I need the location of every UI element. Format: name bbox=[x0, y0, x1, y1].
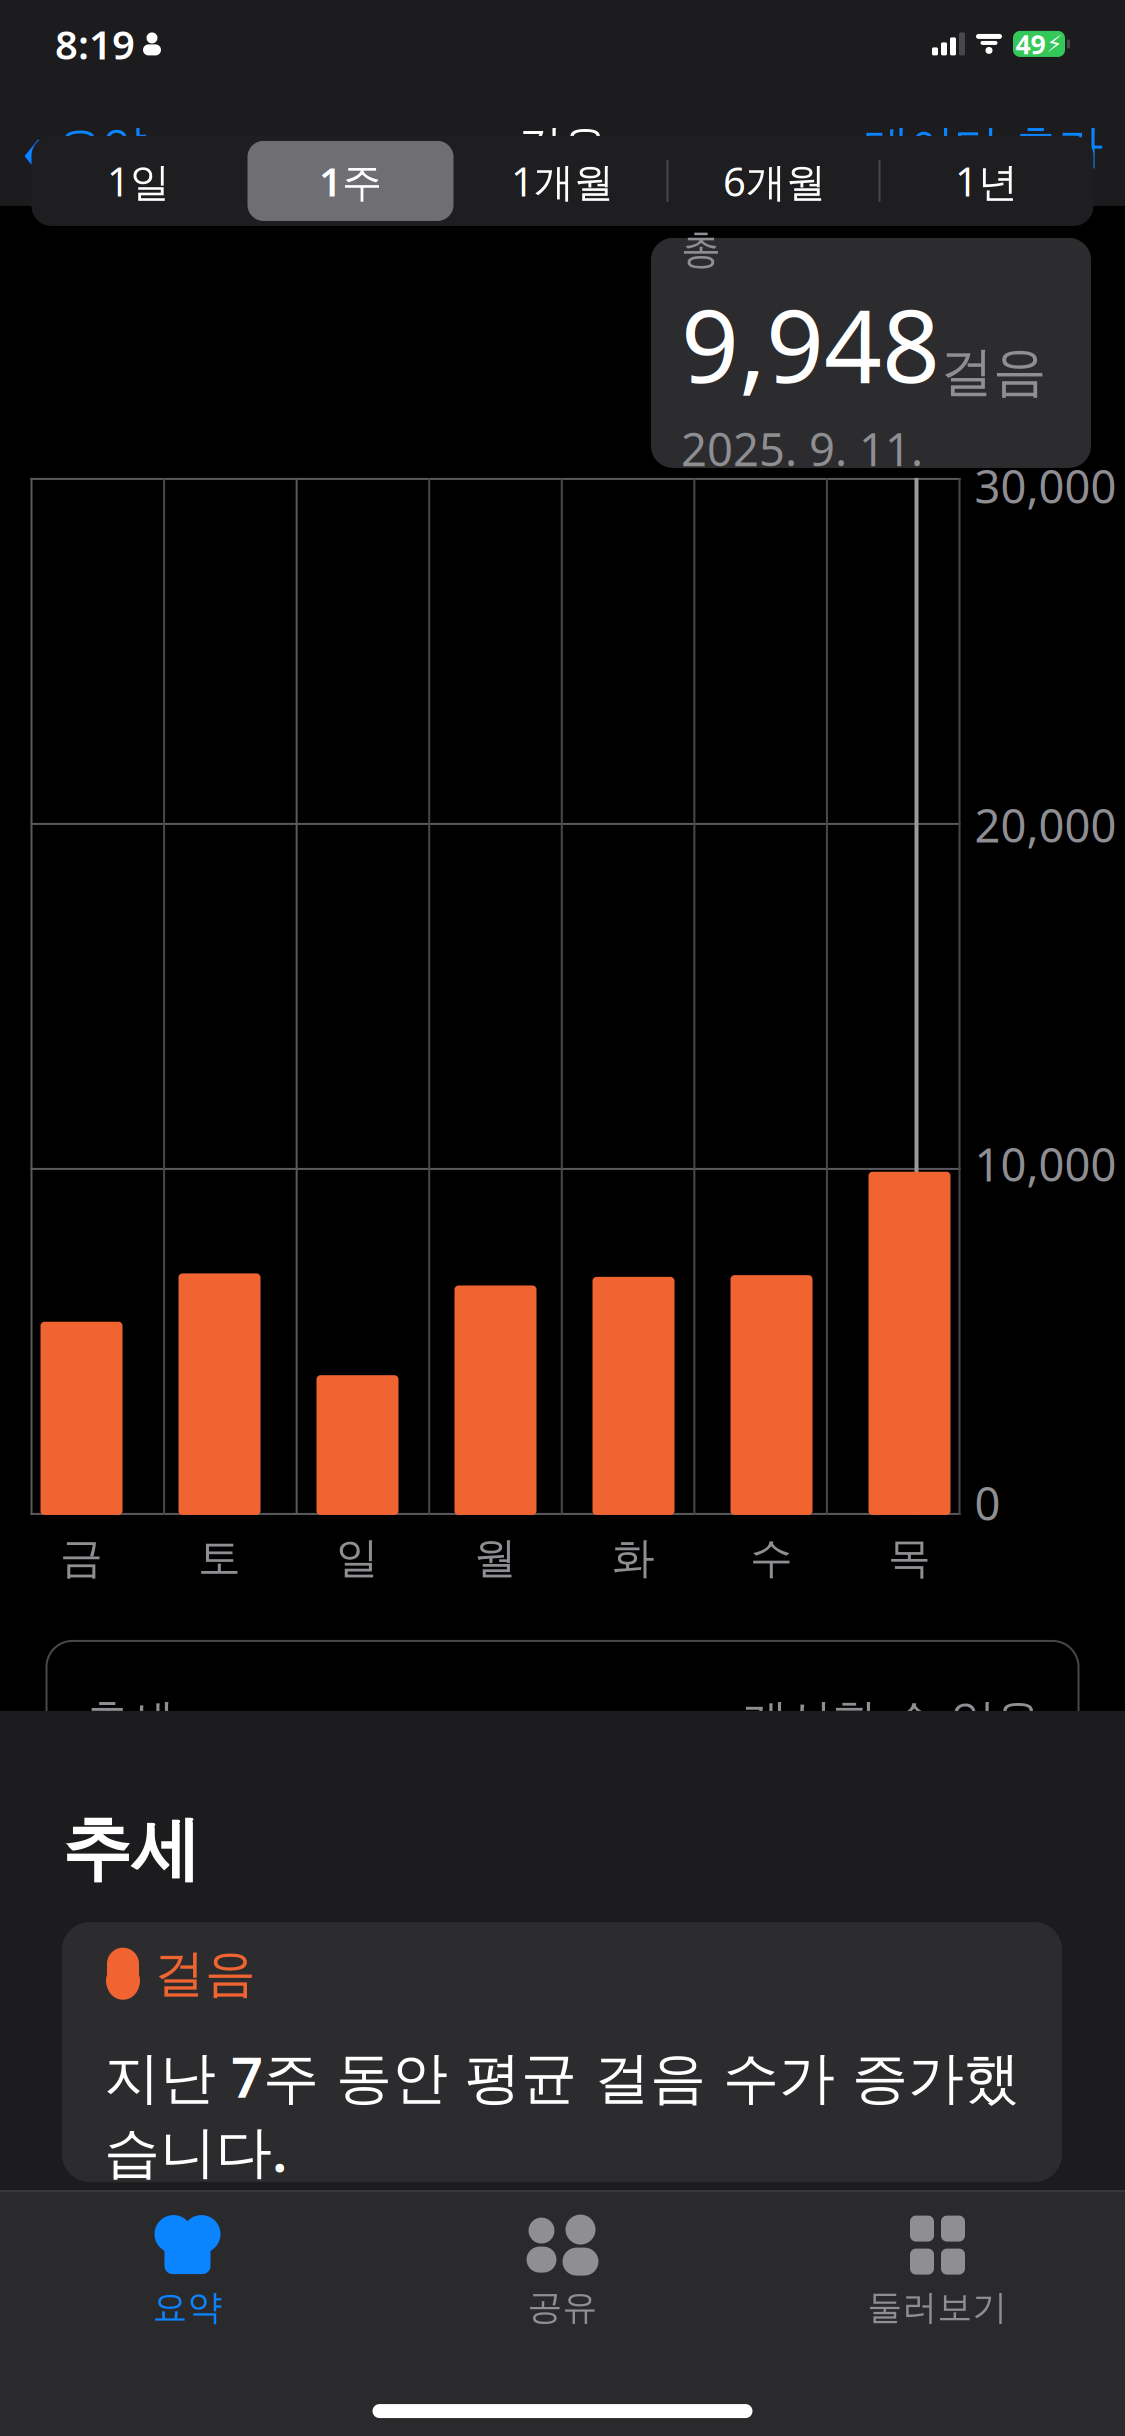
button[interactable]: 1일 bbox=[32, 136, 244, 226]
staticText: 둘러보기 bbox=[867, 2286, 1007, 2329]
staticText: 1년 bbox=[955, 154, 1018, 207]
staticText: 월 bbox=[474, 1532, 517, 1584]
button[interactable]: 걸음 bbox=[62, 1922, 1062, 2182]
button[interactable]: ‹ bbox=[0, 101, 169, 193]
button[interactable]: 1개월 bbox=[456, 136, 668, 226]
staticText: ⚡︎ bbox=[1046, 31, 1062, 57]
button[interactable]: 1년 bbox=[880, 136, 1092, 226]
button[interactable]: 1주 bbox=[244, 136, 456, 226]
staticText: 걸음 bbox=[154, 1943, 256, 2005]
staticText: 데이터 추가 bbox=[864, 119, 1103, 175]
staticText: 수 bbox=[750, 1532, 793, 1584]
button[interactable]: 추세 bbox=[46, 1641, 1078, 1801]
staticText: ‹ bbox=[22, 96, 47, 198]
staticText: 지난 7주 동안 평균 걸음 수가 증가했습니다. bbox=[104, 2039, 1020, 2187]
staticText: 토 bbox=[198, 1532, 241, 1584]
staticText: 추세 bbox=[62, 1807, 200, 1892]
staticText: 화 bbox=[612, 1532, 655, 1584]
staticText: 1주 bbox=[319, 154, 382, 207]
staticText: 공유 bbox=[527, 2286, 597, 2329]
staticText: 총 bbox=[681, 225, 721, 274]
staticText: 9,948 bbox=[681, 276, 940, 411]
staticText: 0 bbox=[974, 1473, 1000, 1533]
staticText: 목 bbox=[888, 1532, 931, 1584]
staticText: 2025. 9. 11. bbox=[681, 419, 923, 479]
staticText: 8:19 bbox=[55, 17, 135, 70]
button[interactable]: 공유 bbox=[375, 2192, 750, 2329]
staticText: 걸음 bbox=[940, 339, 1046, 405]
staticText: 30,000 bbox=[974, 456, 1116, 516]
staticText: 계산할 수 없음 bbox=[742, 1693, 1040, 1749]
staticText: 금 bbox=[60, 1532, 103, 1584]
staticText: 1일 bbox=[107, 154, 170, 207]
staticText: 요약 bbox=[57, 119, 147, 175]
staticText: 요약 bbox=[152, 2286, 222, 2329]
staticText: 걸음 bbox=[517, 119, 607, 175]
button[interactable]: 요약 bbox=[0, 2192, 375, 2329]
staticText: 20,000 bbox=[974, 795, 1116, 855]
button[interactable]: 둘러보기 bbox=[750, 2192, 1125, 2329]
staticText: 10,000 bbox=[974, 1134, 1116, 1194]
staticText: 1개월 bbox=[511, 154, 614, 207]
button[interactable]: 6개월 bbox=[668, 136, 880, 226]
staticText: 6개월 bbox=[723, 154, 826, 207]
staticText: 추세 bbox=[84, 1693, 174, 1749]
staticText: 49 bbox=[1015, 26, 1045, 62]
button[interactable]: 데이터 추가 bbox=[842, 101, 1125, 193]
staticText: 일 bbox=[336, 1532, 379, 1584]
